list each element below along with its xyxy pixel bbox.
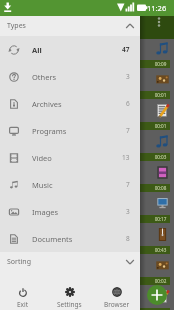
button[interactable]: 00:09 bbox=[0, 39, 170, 68]
button[interactable]: 00:17 bbox=[0, 194, 170, 223]
button[interactable]: Exit bbox=[0, 272, 46, 310]
staticText: 7 bbox=[126, 126, 130, 135]
staticText: Images bbox=[32, 207, 59, 217]
staticText: 7 bbox=[126, 180, 130, 189]
button[interactable]: Sorting bbox=[0, 252, 140, 272]
button[interactable]: Others bbox=[0, 63, 140, 90]
staticText: Types bbox=[7, 21, 26, 31]
staticText: 00:01 bbox=[154, 92, 167, 98]
button[interactable]: More options bbox=[152, 15, 166, 29]
staticText: 47 bbox=[122, 45, 130, 54]
staticText: Sorting bbox=[7, 257, 31, 267]
staticText: 8 bbox=[126, 234, 130, 243]
staticText: 00:43 bbox=[154, 247, 167, 253]
staticText: 00:02 bbox=[154, 278, 167, 284]
staticText: 13 bbox=[122, 153, 130, 162]
button[interactable]: Browser bbox=[93, 272, 140, 310]
staticText: 00:09 bbox=[154, 61, 167, 67]
button[interactable]: Settings bbox=[46, 272, 93, 310]
button[interactable]: 00:08 bbox=[0, 163, 170, 192]
staticText: 00:17 bbox=[154, 216, 167, 222]
staticText: 00:08 bbox=[154, 185, 167, 191]
staticText: Others bbox=[32, 72, 57, 82]
button[interactable]: 00:43 bbox=[0, 225, 170, 254]
button[interactable]: Programs bbox=[0, 117, 140, 144]
button[interactable]: Music bbox=[0, 171, 140, 198]
button[interactable]: Video bbox=[0, 144, 140, 171]
button[interactable]: Add bbox=[147, 285, 167, 305]
staticText: Settings bbox=[57, 300, 82, 309]
staticText: 6 bbox=[126, 99, 130, 108]
staticText: 00:01 bbox=[154, 123, 167, 129]
staticText: Programs bbox=[32, 126, 67, 136]
button[interactable]: 00:02 bbox=[0, 256, 170, 285]
staticText: 3 bbox=[126, 72, 130, 81]
staticText: Music bbox=[32, 180, 53, 190]
staticText: 11:26 bbox=[147, 3, 167, 13]
button[interactable]: All bbox=[0, 36, 140, 63]
button[interactable]: Types bbox=[0, 16, 140, 36]
staticText: 00:03 bbox=[154, 154, 167, 160]
staticText: Browser bbox=[104, 300, 130, 309]
staticText: Documents bbox=[32, 234, 73, 244]
staticText: Exit bbox=[17, 300, 29, 309]
staticText: Video bbox=[32, 153, 52, 163]
button[interactable]: 00:01 bbox=[0, 70, 170, 99]
button[interactable]: 00:03 bbox=[0, 132, 170, 161]
button[interactable]: 00:01 bbox=[0, 101, 170, 130]
button[interactable]: Images bbox=[0, 198, 140, 225]
staticText: All bbox=[32, 45, 42, 55]
staticText: Archives bbox=[32, 99, 62, 109]
button[interactable]: Archives bbox=[0, 90, 140, 117]
button[interactable]: Documents bbox=[0, 225, 140, 252]
button[interactable] bbox=[0, 287, 170, 310]
staticText: 3 bbox=[126, 207, 130, 216]
